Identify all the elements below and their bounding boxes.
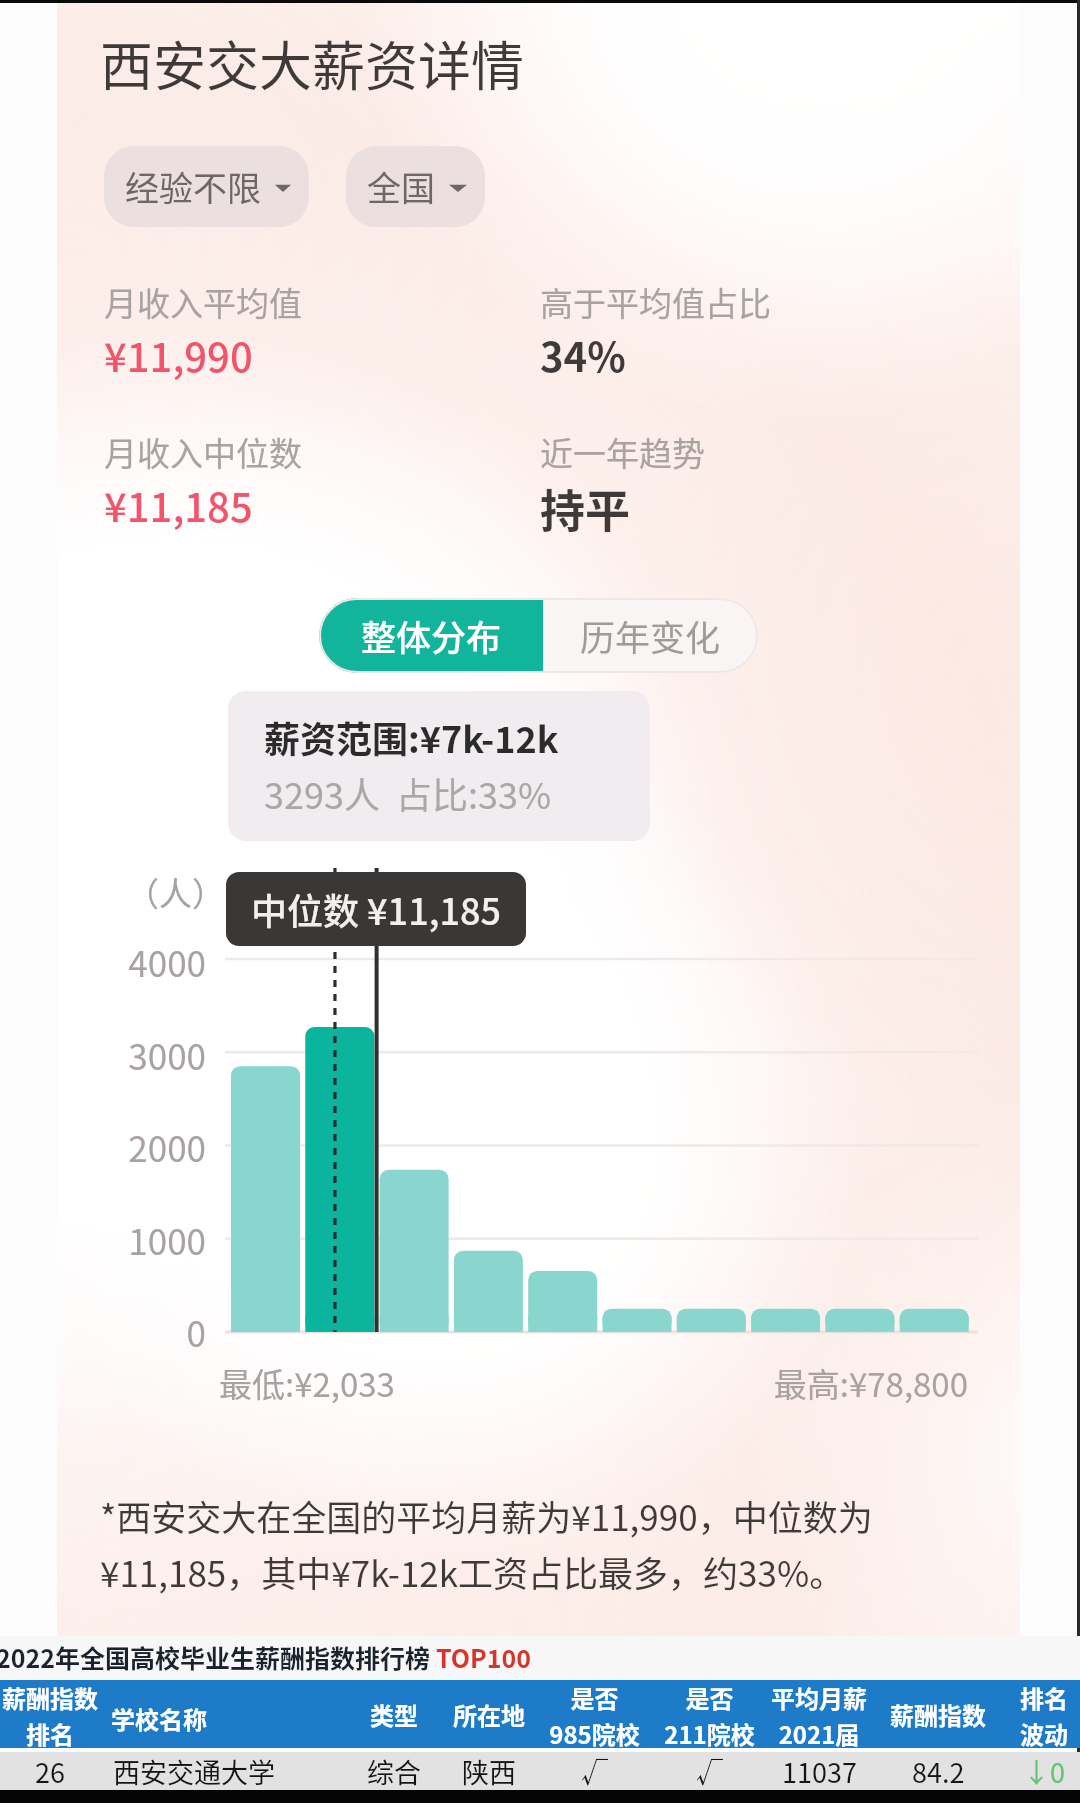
staticText: 是否 985院校 [549,1680,640,1748]
staticText: 薪酬指数 [890,1697,986,1732]
other: 月收入分布柱状图 [100,860,1000,1350]
staticText: 3293人 占比:33% [264,767,552,819]
staticText: （人） [126,868,225,916]
staticText: 中位数 ¥11,185 [251,883,501,935]
staticText: ¥11,990 [104,326,253,384]
staticText: 近一年趋势 [540,428,705,476]
staticText: 历年变化 [580,610,721,661]
button[interactable]: 整体分布 [319,598,543,673]
staticText: √ [696,1752,723,1790]
staticText: √ [581,1752,608,1790]
staticText: 2000 [128,1121,206,1172]
button[interactable]: 历年变化 [543,598,758,673]
staticText: 84.2 [912,1752,965,1790]
staticText: 薪酬指数 排名 [2,1680,98,1748]
staticText: 月收入平均值 [104,278,302,326]
staticText: 薪资范围:¥7k-12k [264,711,559,763]
button[interactable]: 薪资范围:¥7k-12k [228,691,650,841]
staticText: 经验不限 [125,162,261,211]
staticText: 34% [540,326,626,384]
staticText: 最高:¥78,800 [773,1359,968,1407]
button[interactable]: 26 [0,1752,1080,1790]
staticText: 0 [186,1306,206,1357]
button[interactable]: 经验不限 [104,146,309,227]
staticText: 西安交大薪资详情 [100,25,524,102]
staticText: 西安交通大学 [113,1752,275,1790]
staticText: 陕西 [462,1752,516,1790]
staticText: 学校名称 [111,1701,207,1736]
staticText: ↓0 [1023,1752,1065,1790]
staticText: 类型 [370,1697,418,1732]
staticText: 3000 [128,1029,206,1080]
staticText: *西安交大在全国的平均月薪为¥11,990，中位数为 ¥11,185，其中¥7k… [100,1490,873,1597]
staticText: 高于平均值占比 [540,278,771,326]
button[interactable]: 中位数 ¥11,185 [226,872,526,946]
staticText: 平均月薪 2021届 [771,1680,867,1748]
button[interactable]: 全国 [346,146,485,227]
staticText: 是否 211院校 [664,1680,755,1748]
staticText: 最低:¥2,033 [219,1359,395,1407]
staticText: 持平 [540,476,631,541]
staticText: 月收入中位数 [104,428,302,476]
staticText: 排名 波动 [1020,1680,1068,1748]
staticText: 全国 [367,162,435,211]
staticText: 1000 [128,1214,206,1265]
staticText: TOP100 [436,1639,532,1675]
staticText: 11037 [782,1752,857,1790]
staticText: 综合 [367,1752,421,1790]
staticText: 4000 [128,936,206,987]
staticText: 所在地 [453,1697,525,1732]
staticText: 整体分布 [361,610,502,661]
staticText: ¥11,185 [104,476,253,534]
staticText: 2022年全国高校毕业生薪酬指数排行榜 [0,1639,436,1675]
staticText: 26 [35,1752,65,1790]
